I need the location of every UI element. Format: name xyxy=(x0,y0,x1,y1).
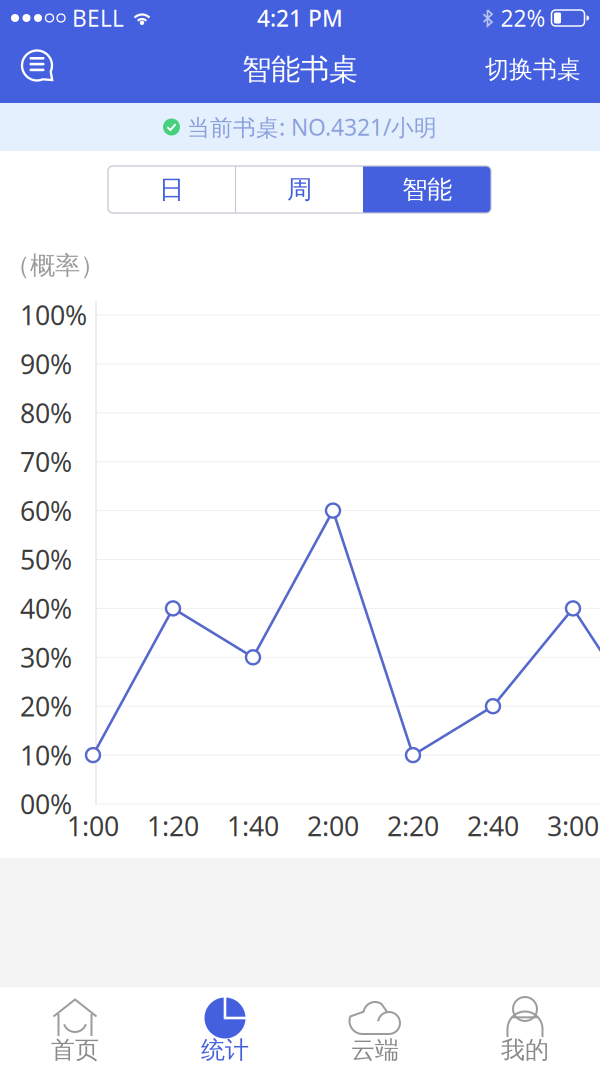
button[interactable]: 切换书桌 xyxy=(485,55,581,84)
button[interactable]: 我的 xyxy=(450,987,600,1067)
staticText: 智能书桌 xyxy=(242,51,358,87)
staticText: 20% xyxy=(20,688,72,724)
button[interactable]: 智能 xyxy=(363,166,491,213)
staticText: 1:20 xyxy=(147,808,199,844)
staticText: 60% xyxy=(20,493,72,528)
staticText: 70% xyxy=(20,444,72,479)
staticText: 1:40 xyxy=(227,808,279,844)
staticText: 100% xyxy=(20,297,87,333)
staticText: 50% xyxy=(20,542,72,577)
staticText: 10% xyxy=(20,737,72,773)
button[interactable]: 首页 xyxy=(0,987,150,1067)
staticText: 00% xyxy=(20,786,72,822)
button[interactable]: 云端 xyxy=(300,987,450,1067)
staticText: 3:00 xyxy=(547,808,599,844)
staticText: 当前书桌: NO.4321/小明 xyxy=(187,112,437,142)
button[interactable]: 统计 xyxy=(150,987,300,1067)
staticText: 4:21 PM xyxy=(257,3,343,33)
staticText: 周 xyxy=(287,174,312,205)
staticText: 2:00 xyxy=(307,808,359,844)
staticText: 我的 xyxy=(501,1035,549,1065)
staticText: 1:00 xyxy=(67,808,119,844)
staticText: 2:20 xyxy=(387,808,439,844)
button[interactable]: 周 xyxy=(236,166,363,213)
staticText: 90% xyxy=(20,346,72,382)
staticText: 22% xyxy=(500,3,545,33)
staticText: 统计 xyxy=(201,1035,249,1065)
staticText: 云端 xyxy=(351,1035,399,1065)
staticText: 30% xyxy=(20,640,72,675)
button[interactable]: 消息 xyxy=(19,49,59,89)
staticText: 日 xyxy=(159,174,184,205)
staticText: 切换书桌 xyxy=(485,55,581,84)
button[interactable]: 日 xyxy=(108,166,235,213)
staticText: 40% xyxy=(20,591,72,626)
staticText: 80% xyxy=(20,395,72,430)
staticText: 首页 xyxy=(51,1035,99,1065)
staticText: 智能 xyxy=(402,174,452,205)
staticText: BELL xyxy=(72,3,124,33)
staticText: 2:40 xyxy=(467,808,519,844)
staticText: （概率） xyxy=(5,250,105,281)
